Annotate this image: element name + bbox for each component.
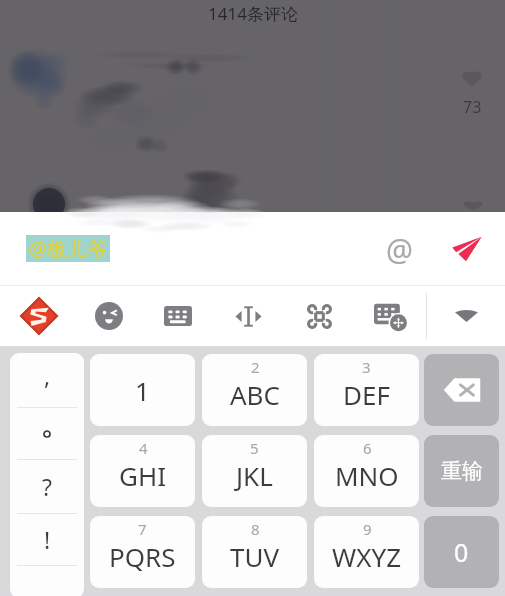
staticText: JKL <box>236 458 273 493</box>
staticText: 73 <box>463 96 482 118</box>
button[interactable]: 9 <box>314 516 419 588</box>
staticText: 1 <box>135 373 150 408</box>
staticText: , <box>44 360 51 391</box>
button[interactable] <box>10 408 84 459</box>
staticText: DEF <box>343 377 390 412</box>
staticText: @板儿爷 <box>29 235 107 262</box>
staticText: ABC <box>230 377 280 412</box>
staticText: 重输 <box>441 458 483 484</box>
button[interactable]: Emoji <box>88 295 130 337</box>
button[interactable]: Mention someone <box>377 227 421 271</box>
button[interactable]: Move cursor <box>227 295 270 338</box>
button[interactable]: @板儿爷 <box>29 235 107 262</box>
button[interactable]: , <box>10 353 84 407</box>
staticText: 5 <box>250 438 259 458</box>
staticText: WXYZ <box>332 539 402 574</box>
staticText: 0 <box>454 535 469 569</box>
staticText: GHI <box>119 458 167 493</box>
button[interactable]: Send <box>445 227 489 271</box>
button[interactable]: 7 <box>90 516 195 588</box>
button[interactable]: Keyboard layout <box>157 295 199 337</box>
button[interactable]: Shortcuts <box>300 297 339 336</box>
button[interactable]: 6 <box>314 435 419 507</box>
button[interactable]: Like <box>459 66 485 118</box>
button[interactable]: 2 <box>202 354 307 426</box>
button[interactable]: Like <box>460 198 486 212</box>
button[interactable]: Floating keyboard <box>367 292 415 340</box>
staticText: 9 <box>363 519 372 539</box>
staticText: 1414条评论 <box>208 2 298 25</box>
button[interactable]: Sogou input <box>13 290 65 342</box>
button[interactable]: ! <box>10 514 84 565</box>
staticText: PQRS <box>109 539 176 574</box>
staticText: ? <box>42 471 52 502</box>
button[interactable]: 1 <box>90 354 195 426</box>
staticText: 7 <box>138 519 147 539</box>
button[interactable]: Hide keyboard <box>445 295 487 337</box>
button[interactable]: Backspace <box>424 354 499 426</box>
staticText: 2 <box>251 357 260 377</box>
staticText: TUV <box>230 539 280 574</box>
button[interactable]: 0 <box>424 516 499 588</box>
staticText: ! <box>44 524 51 555</box>
button[interactable]: 5 <box>202 435 307 507</box>
button[interactable]: 8 <box>202 516 307 588</box>
staticText: 8 <box>251 519 260 539</box>
staticText: @ <box>386 229 413 270</box>
button[interactable]: 3 <box>314 354 419 426</box>
staticText: 6 <box>363 438 372 458</box>
button[interactable]: 重输 <box>424 435 499 507</box>
staticText: 3 <box>362 357 371 377</box>
staticText: 4 <box>139 438 148 458</box>
staticText: MNO <box>335 458 399 493</box>
button[interactable]: 4 <box>90 435 195 507</box>
button[interactable]: ? <box>10 460 84 513</box>
